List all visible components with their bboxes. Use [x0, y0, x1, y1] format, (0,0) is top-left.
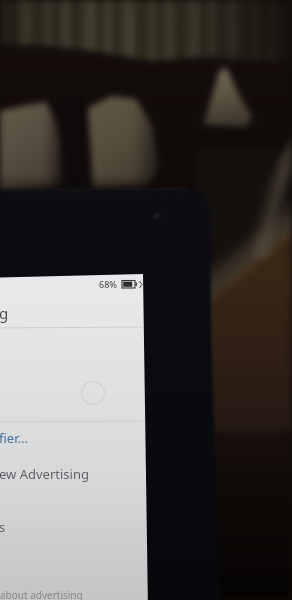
button[interactable]: fier...: [0, 429, 28, 447]
staticText: g: [0, 303, 9, 323]
staticText: s: [0, 518, 6, 536]
staticText: 68%: [99, 278, 117, 290]
button[interactable]: ew Advertising: [0, 465, 89, 483]
button[interactable]: g: [0, 0, 292, 600]
staticText: about advertising: [0, 588, 83, 600]
